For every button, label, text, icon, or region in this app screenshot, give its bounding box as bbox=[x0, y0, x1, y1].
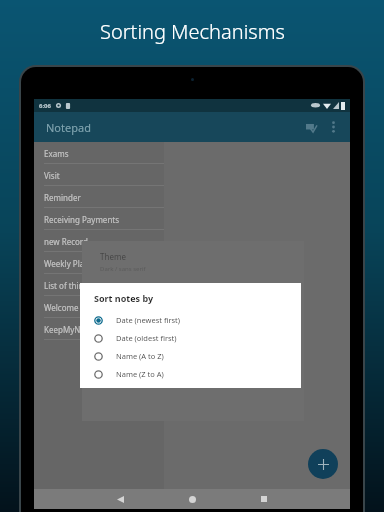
button[interactable]: KeepMyNotes bbox=[34, 318, 164, 340]
button[interactable]: Weekly Plan bbox=[34, 252, 164, 274]
staticText: Edit notes directly bbox=[100, 347, 159, 357]
button[interactable]: Name (Z to A) bbox=[94, 365, 301, 383]
staticText: Markdown/HTML support bbox=[100, 371, 185, 381]
staticText: Exams bbox=[44, 148, 69, 159]
button[interactable]: Welcome bbox=[34, 296, 164, 318]
button[interactable]: Back bbox=[84, 489, 156, 509]
button[interactable]: Markdown/HTML support bbox=[100, 371, 290, 381]
staticText: Reminder bbox=[44, 192, 81, 203]
staticText: Date (newest first) bbox=[116, 315, 181, 325]
staticText: Theme bbox=[100, 251, 126, 262]
button[interactable]: More options bbox=[322, 116, 344, 138]
button[interactable]: Reminder bbox=[34, 186, 164, 208]
button[interactable]: Exams bbox=[34, 142, 164, 164]
staticText: new Record bbox=[44, 236, 88, 247]
button[interactable]: List of things bbox=[34, 274, 164, 296]
button[interactable]: New note bbox=[308, 449, 338, 479]
staticText: 6:06 bbox=[39, 102, 51, 110]
staticText: KeepMyNotes bbox=[44, 324, 97, 335]
staticText: Sort notes by bbox=[94, 292, 154, 304]
staticText: Sorting Mechanisms bbox=[100, 18, 285, 45]
button[interactable]: Select notes bbox=[300, 116, 322, 138]
staticText: Date (oldest first) bbox=[116, 333, 177, 343]
staticText: Name (A to Z) bbox=[116, 351, 164, 361]
staticText: Name (Z to A) bbox=[116, 369, 164, 379]
button[interactable]: Date (oldest first) bbox=[94, 329, 301, 347]
staticText: Welcome bbox=[44, 302, 79, 313]
staticText: Weekly Plan bbox=[44, 258, 90, 269]
staticText: Dark / sans serif bbox=[100, 265, 146, 273]
button[interactable]: Recents bbox=[228, 489, 300, 509]
staticText: Visit bbox=[44, 170, 60, 181]
staticText: Notepad bbox=[46, 120, 91, 135]
staticText: Receiving Payments bbox=[44, 214, 120, 225]
button[interactable]: Name (A to Z) bbox=[94, 347, 301, 365]
button[interactable]: Home bbox=[156, 489, 228, 509]
button[interactable]: Edit notes directly bbox=[100, 347, 290, 357]
button[interactable]: Receiving Payments bbox=[34, 208, 164, 230]
staticText: List of things bbox=[44, 280, 93, 291]
button[interactable]: Date (newest first) bbox=[94, 311, 301, 329]
button[interactable]: Visit bbox=[34, 164, 164, 186]
button[interactable]: new Record bbox=[34, 230, 164, 252]
